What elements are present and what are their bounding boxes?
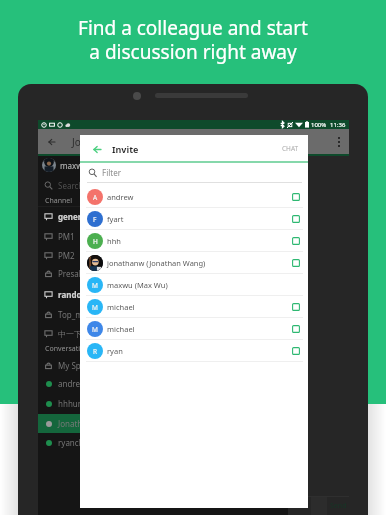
- button[interactable]: random: [38, 285, 288, 304]
- staticText: R: [93, 347, 98, 356]
- button[interactable]: More options: [338, 137, 340, 147]
- button[interactable]: H: [80, 230, 308, 251]
- staticText: M: [92, 281, 98, 290]
- button[interactable]: Send: [330, 501, 347, 511]
- staticText: Presal: [58, 268, 81, 279]
- staticText: Search: [58, 180, 84, 191]
- staticText: M: [92, 325, 98, 334]
- button[interactable]: PM1: [38, 227, 288, 246]
- staticText: Channel: [45, 196, 73, 206]
- button[interactable]: Back: [38, 129, 349, 154]
- button[interactable]: Back: [44, 134, 60, 150]
- staticText: Jonath: [58, 418, 83, 429]
- staticText: andrew: [107, 192, 134, 202]
- button[interactable]: ryanch: [38, 433, 288, 452]
- staticText: maxwu: [60, 160, 88, 171]
- button[interactable]: Presal: [38, 264, 288, 283]
- staticText: andrew: [58, 378, 87, 389]
- button[interactable]: My Sp: [38, 356, 288, 375]
- staticText: 11:36: [330, 121, 346, 129]
- staticText: Conversations: [45, 344, 92, 354]
- staticText: hhhun: [58, 398, 83, 409]
- button[interactable]: CHAT: [282, 138, 308, 159]
- staticText: PM1: [58, 231, 75, 242]
- staticText: Top_m: [58, 309, 83, 320]
- staticText: Jo: [72, 135, 81, 149]
- button[interactable]: Back: [89, 141, 105, 157]
- button[interactable]: M: [80, 274, 308, 295]
- staticText: Invite: [112, 143, 139, 155]
- staticText: Filter: [102, 167, 121, 178]
- button[interactable]: general: [38, 207, 288, 226]
- staticText: maxwu (Max Wu): [107, 280, 168, 290]
- staticText: general: [58, 211, 89, 222]
- staticText: hhh: [107, 236, 121, 246]
- staticText: My Sp: [58, 360, 81, 371]
- staticText: a discussion right away: [89, 39, 297, 65]
- staticText: michael: [107, 302, 135, 312]
- staticText: H: [93, 237, 98, 246]
- button[interactable]: M: [80, 318, 308, 339]
- button[interactable]: Search: [38, 175, 288, 195]
- staticText: M: [92, 303, 98, 312]
- staticText: F: [93, 215, 97, 224]
- staticText: fyart: [107, 214, 124, 224]
- button[interactable]: hhhun: [38, 394, 288, 413]
- staticText: CHAT: [282, 144, 299, 153]
- staticText: Find a colleague and start: [78, 15, 308, 41]
- button[interactable]: M: [80, 296, 308, 317]
- staticText: 中一下: [58, 329, 82, 339]
- button[interactable]: andrew: [38, 374, 288, 393]
- button[interactable]: maxwu: [38, 155, 288, 175]
- staticText: michael: [107, 324, 135, 334]
- staticText: 100%: [311, 121, 327, 129]
- button[interactable]: Top_m: [38, 305, 288, 324]
- staticText: ryanch: [58, 437, 84, 448]
- staticText: PM2: [58, 250, 75, 261]
- button[interactable]: jonathanw (Jonathan Wang): [80, 252, 308, 273]
- button[interactable]: R: [80, 340, 308, 361]
- staticText: random: [58, 289, 90, 300]
- button[interactable]: 中一下: [38, 324, 288, 343]
- staticText: ryan: [107, 346, 123, 356]
- button[interactable]: PM2: [38, 246, 288, 265]
- button[interactable]: Jonath: [38, 414, 288, 433]
- button[interactable]: A: [80, 186, 308, 207]
- staticText: jonathanw (Jonathan Wang): [107, 258, 206, 268]
- button[interactable]: Filter: [80, 163, 308, 182]
- staticText: A: [93, 193, 98, 202]
- button[interactable]: F: [80, 208, 308, 229]
